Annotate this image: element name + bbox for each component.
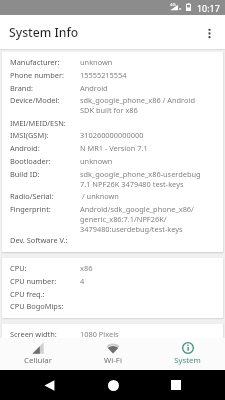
staticText: CPU freq.: <box>10 290 45 300</box>
button[interactable]: More options <box>193 17 225 49</box>
staticText: Bootloader: <box>10 157 51 167</box>
staticText: Radio/Serial: <box>10 192 54 202</box>
staticText: Android <box>80 84 108 94</box>
button[interactable]: Back <box>34 370 64 400</box>
staticText: sdk_google_phone_x86-userdebug 7.1 NPF26… <box>80 170 201 190</box>
staticText: Phone number: <box>10 71 64 81</box>
staticText: 310260000000000 <box>80 131 144 141</box>
staticText: x <box>179 6 182 12</box>
staticText: 10:17 <box>197 2 220 14</box>
staticText: IMSI(GSM): <box>10 131 49 141</box>
button[interactable]: System <box>150 338 225 370</box>
staticText: CPU number: <box>10 277 57 287</box>
staticText: sdk_google_phone_x86 / Android SDK built… <box>80 96 195 116</box>
staticText: unknown <box>80 58 113 68</box>
button[interactable]: Wi-Fi <box>75 338 150 370</box>
staticText: System Info <box>9 24 79 41</box>
staticText: System <box>174 355 201 366</box>
staticText: 4 <box>80 277 85 287</box>
staticText: / unknown <box>80 192 119 202</box>
staticText: x86 <box>80 264 93 274</box>
staticText: Cellular <box>24 355 52 366</box>
button[interactable]: Home <box>98 370 128 400</box>
staticText: CPU: <box>10 264 27 274</box>
staticText: Brand: <box>10 84 33 94</box>
staticText: Dev. Software V.: <box>10 236 68 246</box>
staticText: 15555215554 <box>80 71 127 81</box>
staticText: Android: <box>10 144 40 154</box>
staticText: Wi-Fi <box>104 355 122 366</box>
staticText: 4G <box>170 2 176 8</box>
staticText: Android/sdk_google_phone_x86/ generic_x8… <box>80 205 194 235</box>
staticText: N MR1 - Version 7.1 <box>80 144 148 154</box>
staticText: Manufacturer: <box>10 58 60 68</box>
staticText: Build ID: <box>10 170 40 180</box>
staticText: Fingerprint: <box>10 205 51 215</box>
staticText: CPU BogoMips: <box>10 302 64 312</box>
staticText: unknown <box>80 157 113 167</box>
button[interactable]: Recent apps <box>161 370 191 400</box>
staticText: 1080 Pixels <box>80 330 119 338</box>
staticText: IMEI/MEID/ESN: <box>10 119 66 129</box>
button[interactable]: Cellular <box>0 338 75 370</box>
staticText: Device/Model: <box>10 96 60 106</box>
staticText: Screen width: <box>10 330 57 338</box>
